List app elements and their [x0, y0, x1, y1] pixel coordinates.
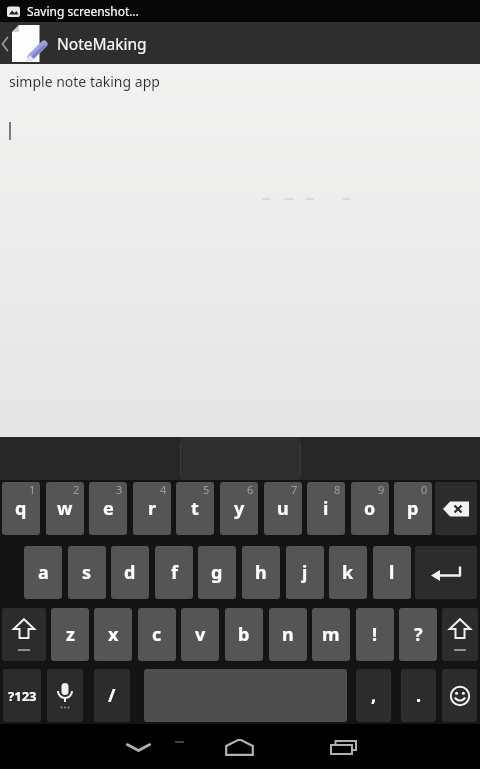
- staticText: !: [372, 622, 378, 647]
- button[interactable]: u: [264, 482, 302, 535]
- button[interactable]: [415, 546, 477, 599]
- staticText: f: [171, 560, 178, 585]
- button[interactable]: a: [24, 546, 62, 599]
- staticText: t: [191, 496, 199, 521]
- button[interactable]: [213, 729, 265, 765]
- button[interactable]: NoteMaking: [0, 22, 480, 64]
- staticText: s: [82, 560, 92, 585]
- staticText: g: [211, 560, 223, 585]
- staticText: ?: [414, 622, 423, 647]
- button[interactable]: ?123: [3, 669, 41, 722]
- staticText: 4: [160, 482, 167, 497]
- staticText: q: [15, 496, 27, 521]
- button[interactable]: simple note taking app: [0, 64, 480, 437]
- button[interactable]: h: [242, 546, 280, 599]
- button[interactable]: o: [351, 482, 389, 535]
- button[interactable]: [442, 608, 478, 661]
- staticText: ?123: [8, 687, 37, 705]
- button[interactable]: [112, 729, 164, 765]
- staticText: 9: [378, 482, 385, 497]
- button[interactable]: d: [111, 546, 149, 599]
- staticText: x: [108, 622, 119, 647]
- button[interactable]: .: [401, 669, 436, 722]
- button[interactable]: t: [176, 482, 214, 535]
- button[interactable]: l: [373, 546, 411, 599]
- button[interactable]: e: [89, 482, 127, 535]
- staticText: 3: [116, 482, 123, 497]
- staticText: m: [322, 622, 340, 647]
- button[interactable]: s: [68, 546, 106, 599]
- button[interactable]: x: [94, 608, 132, 661]
- staticText: 7: [291, 482, 298, 497]
- staticText: z: [66, 622, 75, 647]
- staticText: v: [195, 622, 206, 647]
- staticText: j: [302, 560, 308, 585]
- button[interactable]: [435, 482, 477, 535]
- button[interactable]: c: [138, 608, 176, 661]
- button[interactable]: j: [286, 546, 324, 599]
- button[interactable]: y: [220, 482, 258, 535]
- button[interactable]: i: [307, 482, 345, 535]
- staticText: h: [255, 560, 267, 585]
- button[interactable]: [2, 608, 46, 661]
- staticText: k: [342, 560, 354, 585]
- button[interactable]: k: [329, 546, 367, 599]
- button[interactable]: v: [181, 608, 219, 661]
- staticText: i: [323, 496, 329, 521]
- staticText: NoteMaking: [57, 33, 147, 54]
- staticText: simple note taking app: [9, 72, 160, 91]
- button[interactable]: q: [2, 482, 40, 535]
- button[interactable]: z: [51, 608, 89, 661]
- staticText: /: [108, 683, 116, 708]
- staticText: l: [389, 560, 395, 585]
- button[interactable]: ,: [356, 669, 391, 722]
- staticText: o: [364, 496, 376, 521]
- button[interactable]: f: [155, 546, 193, 599]
- staticText: 1: [29, 482, 36, 497]
- button[interactable]: b: [225, 608, 263, 661]
- staticText: e: [103, 496, 114, 521]
- staticText: c: [152, 622, 162, 647]
- button[interactable]: w: [46, 482, 84, 535]
- staticText: b: [238, 622, 250, 647]
- staticText: 0: [421, 482, 428, 497]
- staticText: 8: [334, 482, 341, 497]
- button[interactable]: !: [356, 608, 394, 661]
- staticText: y: [234, 496, 245, 521]
- staticText: Saving screenshot…: [27, 3, 139, 19]
- button[interactable]: /: [94, 669, 130, 722]
- staticText: r: [148, 496, 157, 521]
- button[interactable]: m: [312, 608, 350, 661]
- staticText: a: [38, 560, 49, 585]
- button[interactable]: r: [133, 482, 171, 535]
- staticText: u: [277, 496, 289, 521]
- button[interactable]: ?: [399, 608, 437, 661]
- staticText: 6: [247, 482, 254, 497]
- staticText: .: [416, 683, 422, 708]
- button[interactable]: n: [269, 608, 307, 661]
- staticText: 2: [73, 482, 80, 497]
- button[interactable]: [47, 669, 83, 722]
- staticText: ,: [371, 683, 377, 708]
- button[interactable]: p: [394, 482, 432, 535]
- staticText: n: [282, 622, 294, 647]
- staticText: 5: [203, 482, 210, 497]
- button[interactable]: [442, 669, 477, 722]
- button[interactable]: g: [198, 546, 236, 599]
- staticText: w: [57, 496, 73, 521]
- button[interactable]: [317, 729, 369, 765]
- staticText: d: [124, 560, 136, 585]
- staticText: p: [407, 496, 419, 521]
